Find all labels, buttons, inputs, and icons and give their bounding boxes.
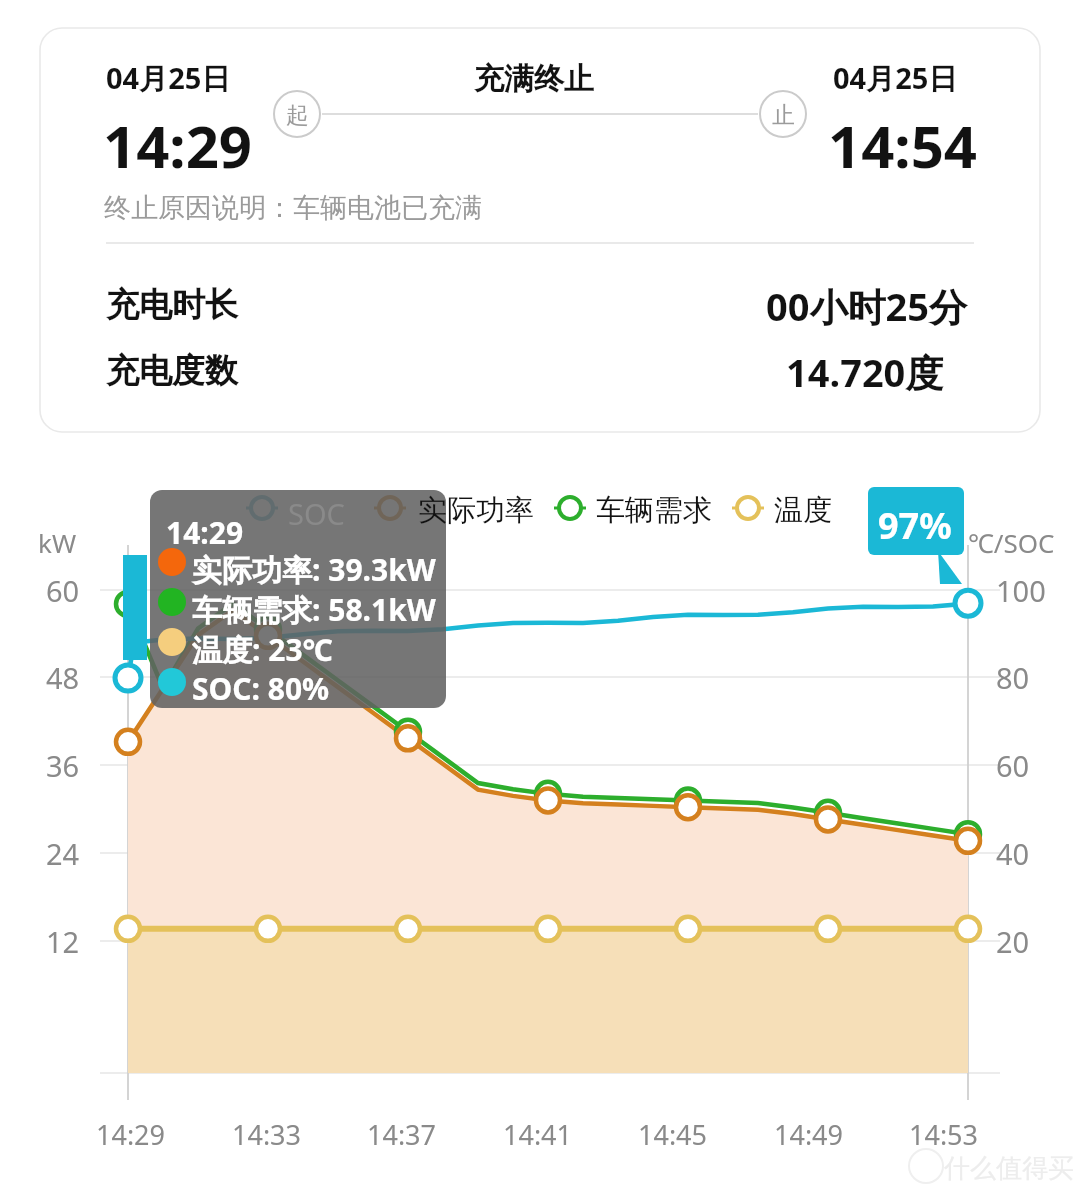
staticText: 车辆需求: [596, 492, 712, 529]
staticText: 36: [46, 746, 80, 785]
staticText: kW: [38, 525, 77, 560]
staticText: 14:29: [103, 106, 253, 185]
staticText: 充电度数: [106, 350, 238, 392]
staticText: 100: [996, 571, 1046, 610]
button[interactable]: 充电度数: [64, 336, 1016, 402]
staticText: 04月25日: [106, 58, 231, 98]
staticText: 14:53: [909, 1116, 979, 1153]
staticText: 48: [46, 658, 80, 697]
staticText: 14:29: [96, 1116, 166, 1153]
staticText: SOC: 80%: [192, 668, 330, 709]
staticText: 14:33: [232, 1116, 302, 1153]
staticText: 充满终止: [474, 60, 594, 98]
staticText: 40: [996, 834, 1030, 873]
staticText: 什么值得买: [944, 1152, 1074, 1185]
staticText: 车辆需求: 58.1kW: [192, 589, 436, 630]
button[interactable]: SOC 97%: [868, 487, 964, 559]
staticText: 97%: [878, 501, 952, 550]
staticText: 04月25日: [833, 58, 958, 98]
staticText: 00小时25分: [766, 280, 967, 332]
staticText: 20: [996, 922, 1030, 961]
staticText: 14.720度: [786, 346, 944, 398]
staticText: 14:29: [166, 512, 244, 553]
staticText: 14:37: [367, 1116, 437, 1153]
staticText: 12: [46, 922, 80, 961]
staticText: 温度: [774, 492, 832, 529]
staticText: 起: [286, 101, 309, 130]
staticText: 止: [772, 101, 795, 130]
staticText: ℃/SOC: [968, 525, 1055, 560]
staticText: 温度: 23℃: [192, 629, 333, 670]
staticText: 60: [996, 746, 1030, 785]
staticText: 实际功率: 39.3kW: [192, 549, 436, 590]
staticText: 实际功率: [418, 492, 534, 529]
staticText: 充电时长: [106, 284, 238, 326]
staticText: SOC: [288, 494, 345, 533]
staticText: 14:45: [638, 1116, 708, 1153]
staticText: 14:41: [503, 1116, 573, 1153]
staticText: 24: [46, 834, 80, 873]
staticText: 终止原因说明：车辆电池已充满: [104, 191, 482, 225]
button[interactable]: 充电时长: [64, 270, 1016, 336]
staticText: 80: [996, 658, 1030, 697]
staticText: 14:54: [828, 106, 978, 185]
staticText: 14:49: [774, 1116, 844, 1153]
staticText: 60: [46, 571, 80, 610]
